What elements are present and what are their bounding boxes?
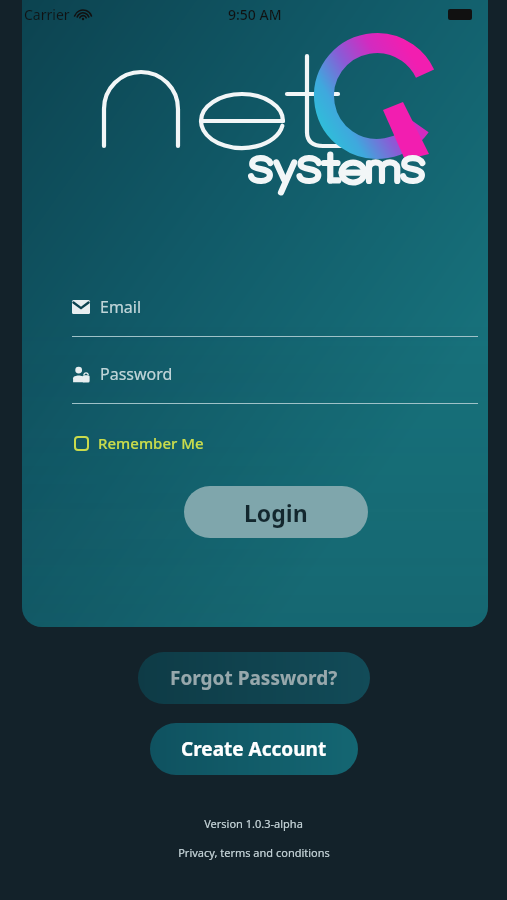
staticText: Create Account	[181, 736, 327, 762]
staticText: Version 1.0.3-alpha	[204, 816, 303, 831]
staticText: Email	[100, 296, 142, 318]
staticText: Privacy, terms and conditions	[178, 845, 330, 860]
staticText: Login	[244, 497, 308, 528]
button[interactable]: Forgot Password?	[138, 652, 370, 704]
staticText: Carrier	[24, 5, 70, 24]
staticText: Forgot Password?	[170, 665, 338, 691]
staticText: 9:50 AM	[228, 5, 282, 24]
button[interactable]: Remember Me	[72, 430, 206, 456]
button[interactable]: Privacy, terms and conditions	[178, 845, 330, 860]
button[interactable]: Login	[184, 486, 368, 538]
staticText: Password	[100, 363, 173, 385]
button[interactable]: Create Account	[150, 723, 358, 775]
staticText: Remember Me	[98, 433, 204, 453]
